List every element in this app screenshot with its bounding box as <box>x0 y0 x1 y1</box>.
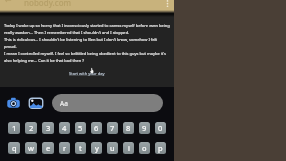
button[interactable]: w <box>25 142 37 154</box>
staticText: 2 <box>29 123 34 133</box>
button[interactable]: Camera <box>7 96 20 109</box>
button[interactable]: 5 <box>75 122 86 134</box>
button[interactable]: e <box>42 142 54 154</box>
button[interactable]: Start with your day <box>69 71 105 76</box>
staticText: This is ridiculous... I shouldn't be lis… <box>4 37 157 42</box>
button[interactable]: 9 <box>139 122 150 134</box>
staticText: w <box>28 143 34 153</box>
button[interactable]: q <box>8 142 20 154</box>
button[interactable]: r <box>59 142 70 154</box>
button[interactable]: nobody.com <box>24 0 72 8</box>
button[interactable]: p <box>155 142 166 154</box>
button[interactable]: u <box>107 142 118 154</box>
staticText: i <box>128 143 130 153</box>
button[interactable]: 1 <box>8 122 20 134</box>
staticText: 4 <box>62 123 67 133</box>
button[interactable]: o <box>139 142 150 154</box>
staticText: y <box>95 143 99 153</box>
button[interactable]: Back <box>0 0 174 11</box>
staticText: also helping me... Can it be that bad th… <box>4 58 84 63</box>
staticText: ← <box>5 0 12 5</box>
staticText: proud. <box>4 44 17 49</box>
staticText: 1 <box>12 123 17 133</box>
staticText: I mean I controlled myself. I feel so be… <box>4 51 166 56</box>
button[interactable]: Back <box>5 0 12 5</box>
staticText: Aa <box>60 99 68 108</box>
staticText: 6 <box>94 123 99 133</box>
staticText: 8 <box>126 123 131 133</box>
staticText: o <box>142 143 147 153</box>
button[interactable]: y <box>91 142 102 154</box>
button[interactable]: 4 <box>59 122 70 134</box>
button[interactable]: 3 <box>42 122 54 134</box>
staticText: r <box>63 143 67 153</box>
button[interactable]: 2 <box>25 122 37 134</box>
button[interactable]: 6 <box>91 122 102 134</box>
staticText: 5 <box>78 123 83 133</box>
button[interactable]: 7 <box>107 122 118 134</box>
button[interactable]: Aa <box>52 94 163 112</box>
staticText: u <box>110 143 115 153</box>
button[interactable]: More options <box>166 0 169 8</box>
staticText: Today I woke up so horny that I inconsci… <box>4 23 170 28</box>
button[interactable]: i <box>123 142 134 154</box>
staticText: e <box>46 143 51 153</box>
staticText: 7 <box>110 123 115 133</box>
staticText: 3 <box>46 123 51 133</box>
button[interactable]: 0 <box>155 122 166 134</box>
button[interactable]: t <box>75 142 86 154</box>
button[interactable]: Photo <box>28 95 44 111</box>
staticText: t <box>79 143 82 153</box>
staticText: 9 <box>142 123 147 133</box>
button[interactable]: 8 <box>123 122 134 134</box>
staticText: q <box>12 143 17 153</box>
staticText: p <box>158 143 163 153</box>
staticText: 0 <box>158 123 163 133</box>
staticText: really awaken... Then I remembered that … <box>4 30 130 35</box>
